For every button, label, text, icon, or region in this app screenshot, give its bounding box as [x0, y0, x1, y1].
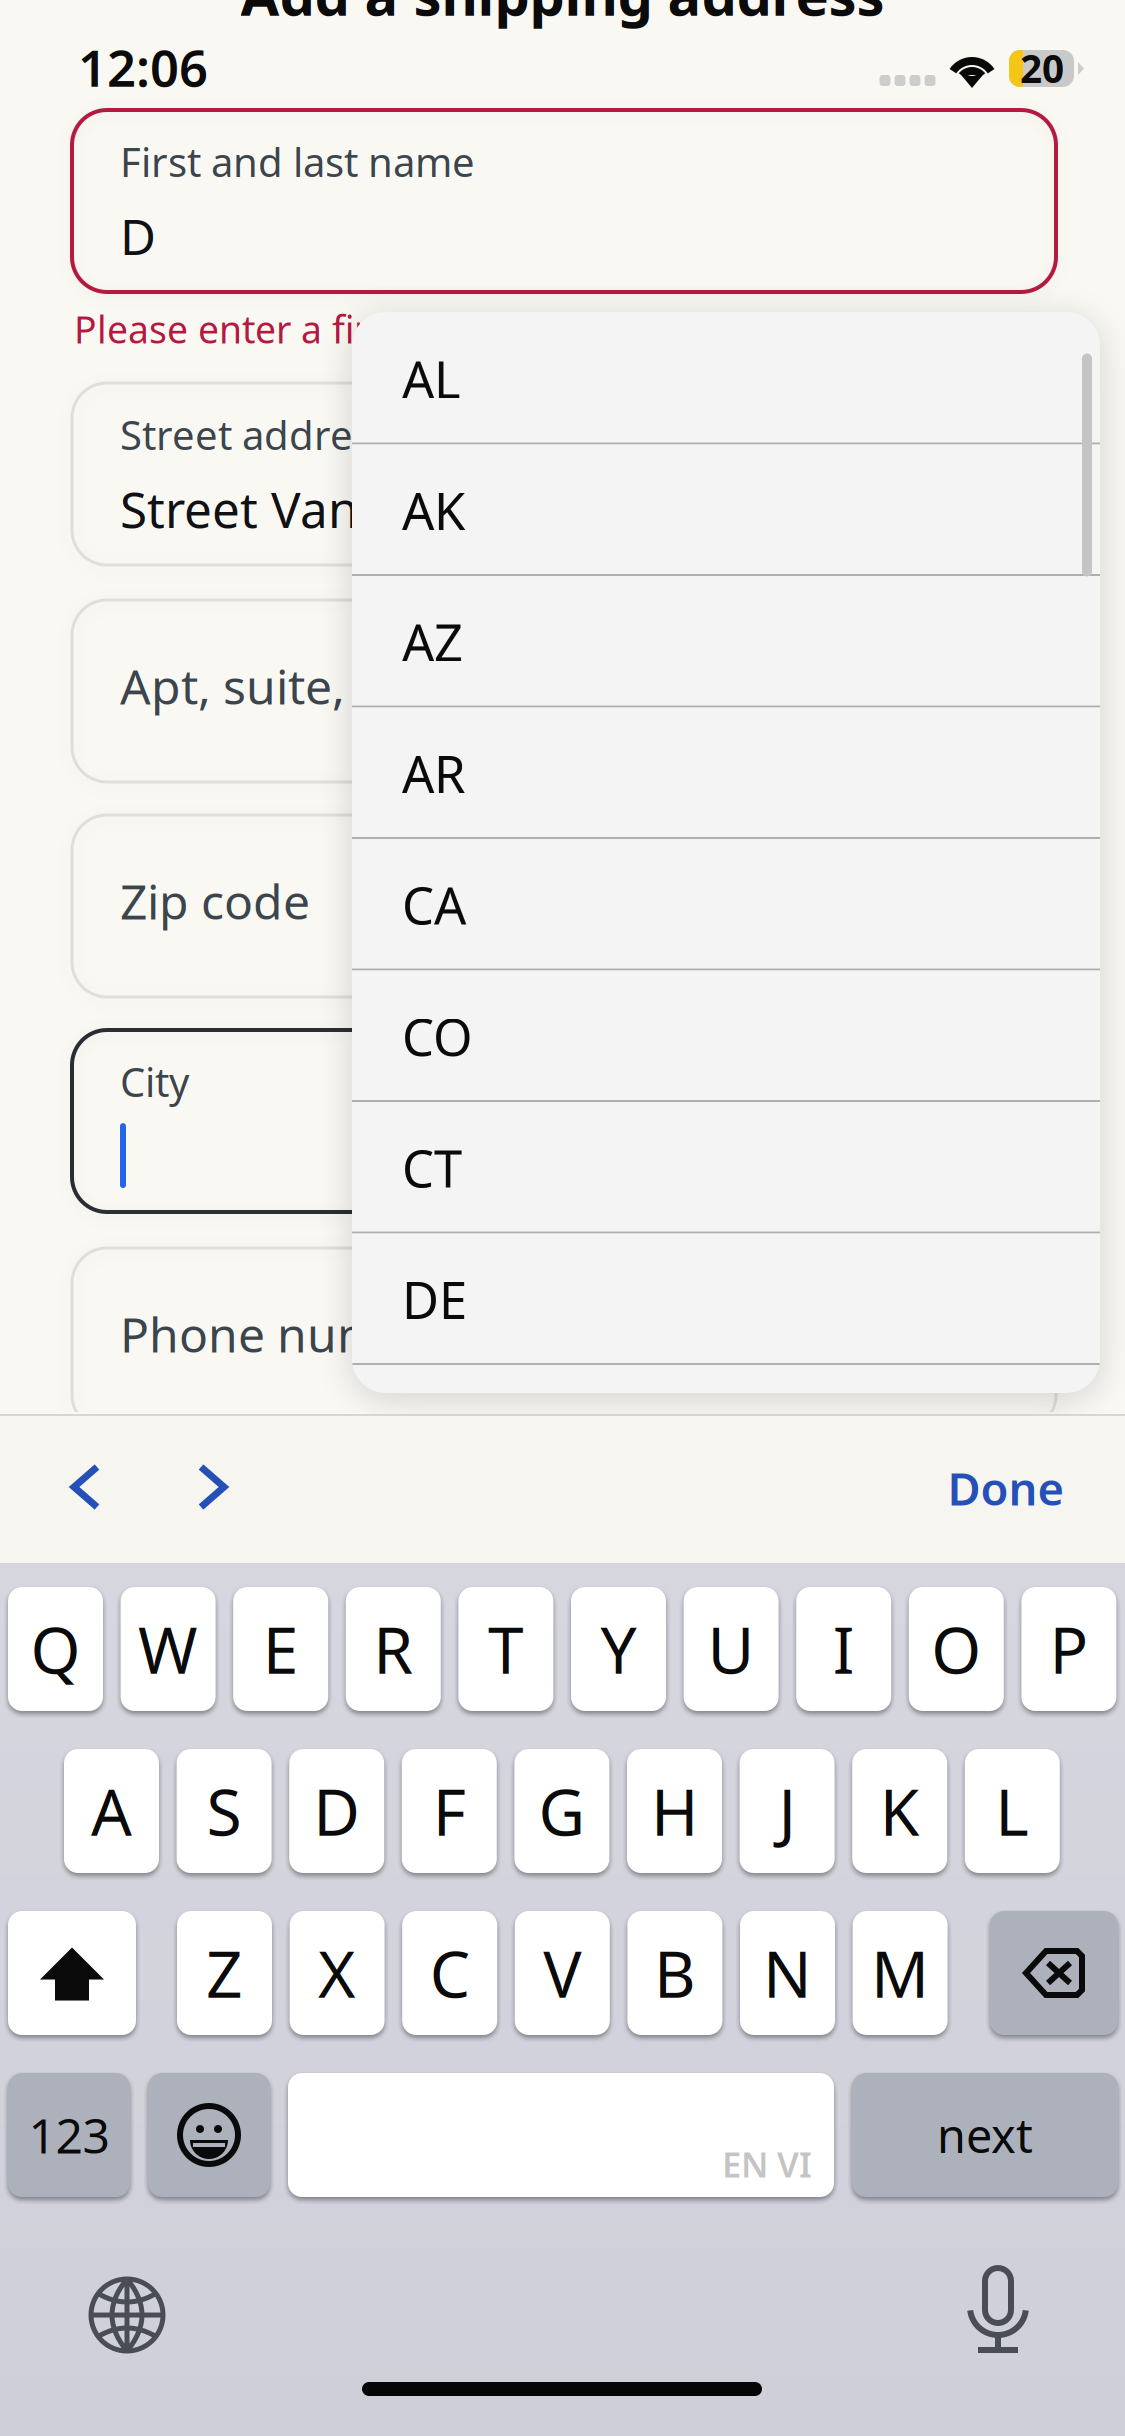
- staticText: U: [708, 1606, 755, 1691]
- staticText: G: [538, 1768, 585, 1853]
- button[interactable]: AR: [352, 707, 1100, 839]
- button[interactable]: N: [740, 1911, 835, 2035]
- button[interactable]: X: [290, 1911, 385, 2035]
- staticText: AR: [402, 740, 466, 807]
- staticText: E: [263, 1606, 299, 1691]
- staticText: D: [313, 1768, 360, 1853]
- button[interactable]: S: [177, 1749, 272, 1873]
- button[interactable]: DE: [352, 1233, 1100, 1365]
- button[interactable]: Previous field: [36, 1431, 135, 1543]
- staticText: M: [871, 1930, 929, 2015]
- staticText: X: [318, 1930, 356, 2015]
- button[interactable]: U: [684, 1587, 779, 1711]
- staticText: O: [931, 1606, 981, 1691]
- staticText: Y: [600, 1606, 636, 1691]
- staticText: Phone number: [120, 1302, 459, 1366]
- staticText: I: [833, 1606, 855, 1691]
- staticText: EN VI: [722, 2141, 812, 2187]
- staticText: S: [207, 1768, 242, 1853]
- staticText: 20: [1020, 42, 1064, 94]
- button[interactable]: A: [64, 1749, 159, 1873]
- staticText: 123: [28, 2103, 109, 2167]
- staticText: Done: [947, 1458, 1064, 1518]
- staticText: next: [937, 2104, 1033, 2166]
- staticText: C: [430, 1930, 470, 2015]
- button[interactable]: Street address: [72, 383, 1056, 565]
- staticText: CA: [402, 871, 466, 938]
- button[interactable]: E: [233, 1587, 328, 1711]
- staticText: A: [91, 1768, 132, 1853]
- button[interactable]: Delete: [990, 1911, 1118, 2035]
- staticText: CO: [402, 1003, 473, 1070]
- staticText: P: [1049, 1606, 1088, 1691]
- staticText: City: [120, 1055, 189, 1108]
- button[interactable]: T: [458, 1587, 553, 1711]
- staticText: AZ: [402, 608, 463, 675]
- staticText: AK: [402, 477, 465, 544]
- button[interactable]: Phone number: [72, 1248, 1056, 1430]
- button[interactable]: next: [852, 2073, 1118, 2197]
- button[interactable]: I: [796, 1587, 891, 1711]
- staticText: H: [651, 1768, 698, 1853]
- button[interactable]: Z: [177, 1911, 272, 2035]
- button[interactable]: C: [402, 1911, 497, 2035]
- staticText: D: [120, 203, 156, 269]
- staticText: K: [880, 1768, 920, 1853]
- staticText: T: [488, 1606, 524, 1691]
- button[interactable]: W: [121, 1587, 216, 1711]
- button[interactable]: L: [965, 1749, 1060, 1873]
- button[interactable]: Q: [8, 1587, 103, 1711]
- button[interactable]: Apt, suite, etc (optional): [72, 600, 1056, 782]
- button[interactable]: CO: [352, 970, 1100, 1102]
- staticText: Please enter a first and last name: [74, 304, 659, 354]
- staticText: 12:06: [78, 33, 208, 101]
- staticText: L: [995, 1768, 1029, 1853]
- staticText: First and last name: [120, 135, 475, 188]
- button[interactable]: CA: [352, 839, 1100, 970]
- button[interactable]: Next field: [163, 1431, 262, 1543]
- button[interactable]: Dictate: [970, 2268, 1026, 2354]
- staticText: Q: [30, 1606, 80, 1691]
- button[interactable]: F: [402, 1749, 497, 1873]
- button[interactable]: Zip code: [72, 815, 1056, 997]
- button[interactable]: G: [514, 1749, 609, 1873]
- staticText: Apt, suite, etc (optional): [120, 654, 650, 718]
- button[interactable]: D: [289, 1749, 384, 1873]
- button[interactable]: Y: [571, 1587, 666, 1711]
- button[interactable]: First and last name: [72, 110, 1056, 292]
- button[interactable]: Done: [927, 1440, 1084, 1536]
- button[interactable]: Space: [288, 2073, 834, 2197]
- button[interactable]: Switch keyboard: [88, 2276, 166, 2354]
- button[interactable]: CT: [352, 1102, 1100, 1233]
- staticText: N: [763, 1930, 812, 2015]
- button[interactable]: AZ: [352, 576, 1100, 707]
- button[interactable]: M: [853, 1911, 948, 2035]
- button[interactable]: City: [72, 1030, 1056, 1212]
- staticText: F: [433, 1768, 466, 1853]
- staticText: Add a shipping address: [240, 0, 884, 31]
- button[interactable]: O: [909, 1587, 1004, 1711]
- button[interactable]: R: [346, 1587, 441, 1711]
- button[interactable]: V: [515, 1911, 610, 2035]
- button[interactable]: AL: [352, 313, 1100, 444]
- button[interactable]: K: [852, 1749, 947, 1873]
- button[interactable]: Emoji: [148, 2073, 270, 2197]
- staticText: DE: [402, 1266, 467, 1333]
- button[interactable]: AK: [352, 444, 1100, 576]
- staticText: Street Van Ness: [120, 476, 484, 542]
- staticText: J: [779, 1768, 796, 1853]
- staticText: Z: [206, 1930, 243, 2015]
- staticText: CT: [402, 1134, 462, 1201]
- button[interactable]: 123: [8, 2073, 130, 2197]
- staticText: AL: [402, 345, 461, 412]
- button[interactable]: H: [627, 1749, 722, 1873]
- staticText: V: [543, 1930, 581, 2015]
- staticText: Zip code: [120, 869, 310, 933]
- staticText: W: [138, 1606, 198, 1691]
- button[interactable]: B: [627, 1911, 722, 2035]
- button[interactable]: P: [1021, 1587, 1116, 1711]
- staticText: B: [654, 1930, 696, 2015]
- button[interactable]: J: [740, 1749, 835, 1873]
- staticText: Street address: [120, 408, 391, 461]
- button[interactable]: Shift: [8, 1911, 136, 2035]
